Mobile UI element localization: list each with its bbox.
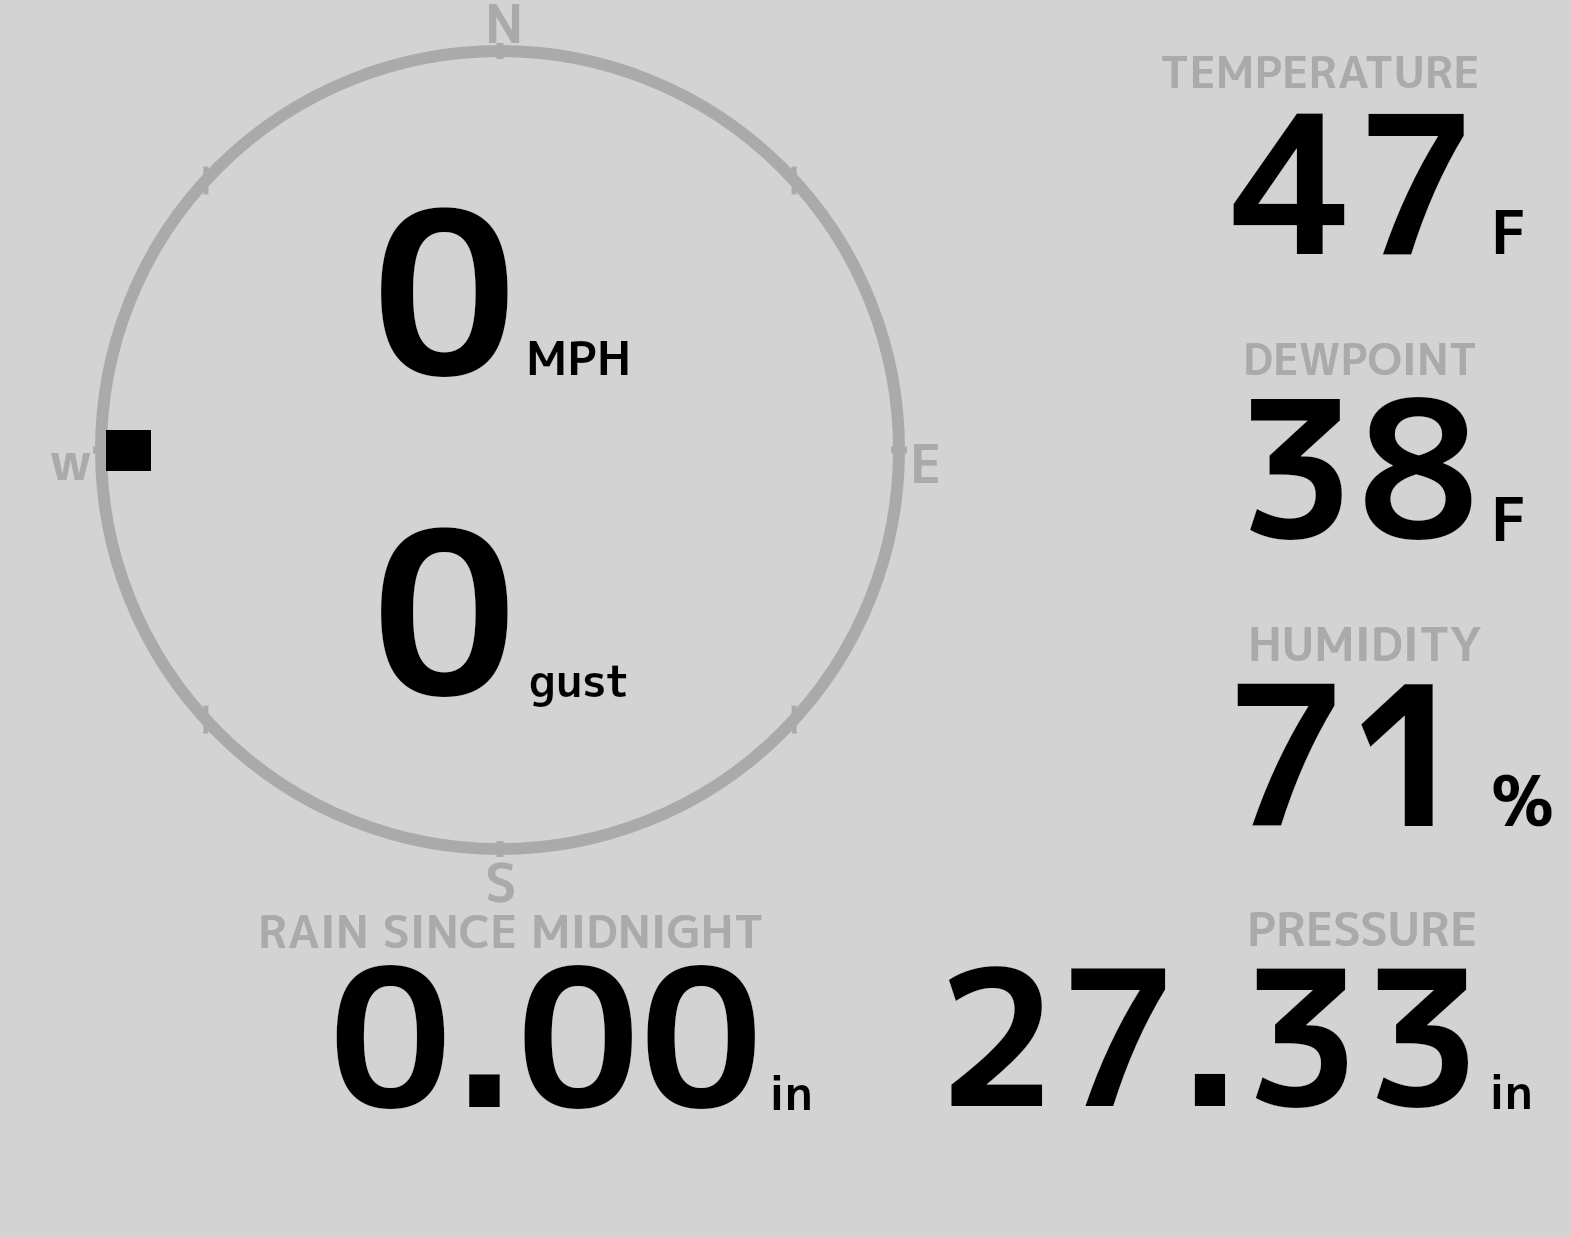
button[interactable]: Wind speed and direction — [95, 44, 907, 856]
staticText: MPH — [526, 324, 632, 390]
staticText: HUMIDITY — [1248, 612, 1482, 676]
staticText: in — [769, 1059, 813, 1125]
staticText: 0 — [372, 132, 517, 447]
staticText: F — [1491, 475, 1527, 560]
staticText: N — [485, 0, 524, 60]
button[interactable]: Pressure 27.33 inches — [920, 890, 1540, 1118]
staticText: F — [1491, 188, 1527, 273]
staticText: DEWPOINT — [1243, 329, 1478, 389]
button[interactable]: Dew point 38 degrees Fahrenheit — [1110, 322, 1571, 562]
staticText: 38 — [1236, 334, 1480, 599]
staticText: 27.33 — [936, 903, 1484, 1167]
staticText: 71 — [1223, 616, 1473, 888]
staticText: S — [485, 846, 517, 919]
staticText: 0 — [372, 452, 517, 767]
staticText: TEMPERATURE — [1160, 41, 1480, 102]
staticText: PRESSURE — [1247, 897, 1478, 961]
staticText: E — [910, 427, 942, 500]
button[interactable]: Temperature 47 degrees Fahrenheit — [1110, 36, 1571, 276]
staticText: gust — [529, 649, 630, 712]
staticText: RAIN SINCE MIDNIGHT — [258, 900, 764, 963]
button[interactable]: Humidity 71 percent — [1110, 607, 1571, 847]
staticText: 47 — [1231, 48, 1477, 316]
staticText: 0.00 — [329, 901, 763, 1169]
staticText: % — [1491, 751, 1555, 849]
button[interactable]: Rain since midnight 0.00 inches — [240, 893, 840, 1118]
staticText: in — [1489, 1058, 1533, 1124]
staticText: w — [49, 424, 93, 497]
